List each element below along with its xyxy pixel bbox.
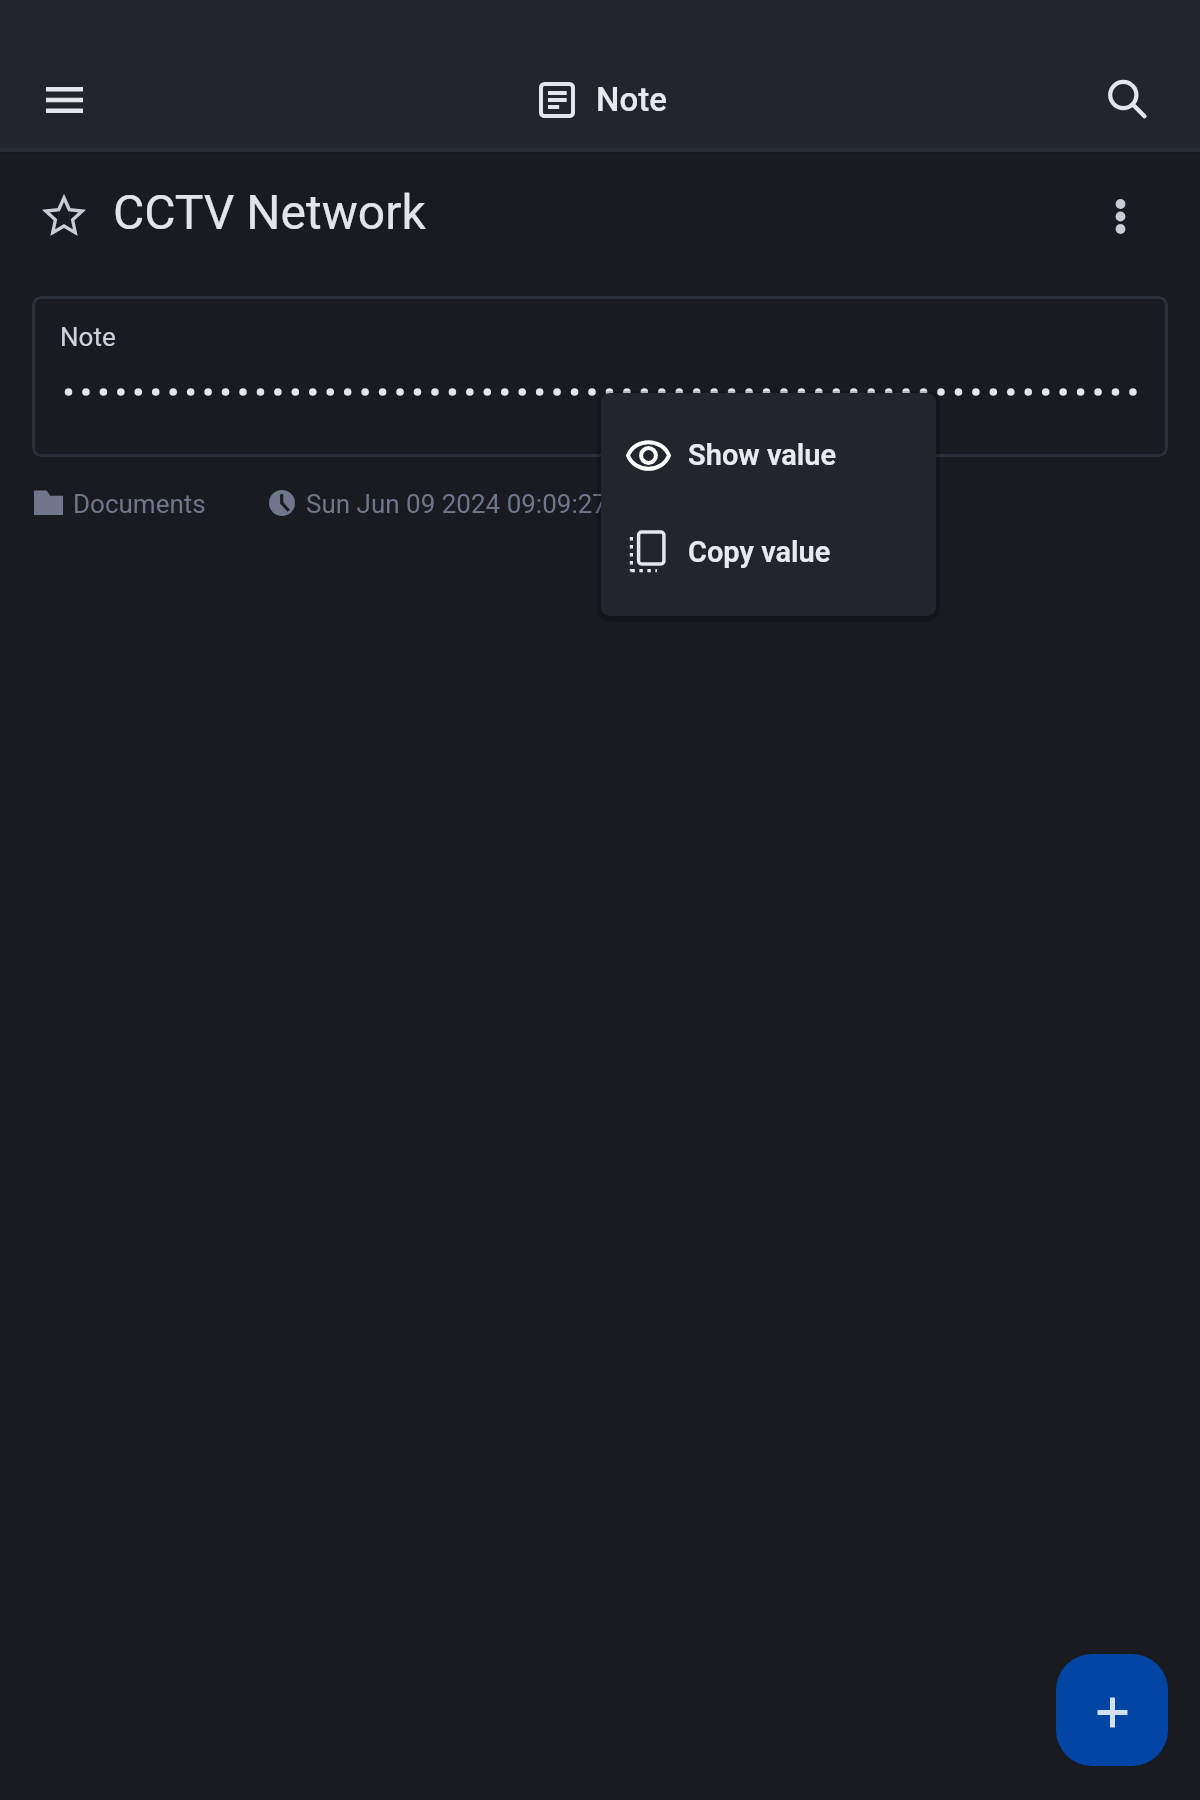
staticText: CCTV Network: [113, 184, 426, 240]
button[interactable]: Show value: [601, 407, 936, 504]
staticText: Note: [60, 322, 116, 352]
button[interactable]: Search: [1084, 55, 1172, 143]
button[interactable]: More options: [1086, 183, 1154, 251]
button[interactable]: Copy value: [601, 504, 936, 601]
staticText: Show value: [688, 438, 837, 472]
staticText: Documents: [73, 489, 206, 519]
button[interactable]: Add: [1056, 1654, 1168, 1766]
staticText: Sun Jun 09 2024 09:09:27: [306, 489, 607, 519]
staticText: Note: [596, 80, 667, 119]
button[interactable]: Note: [32, 296, 1168, 457]
button[interactable]: Favorite: [30, 183, 98, 251]
staticText: Copy value: [688, 535, 831, 569]
button[interactable]: Menu: [20, 56, 108, 144]
